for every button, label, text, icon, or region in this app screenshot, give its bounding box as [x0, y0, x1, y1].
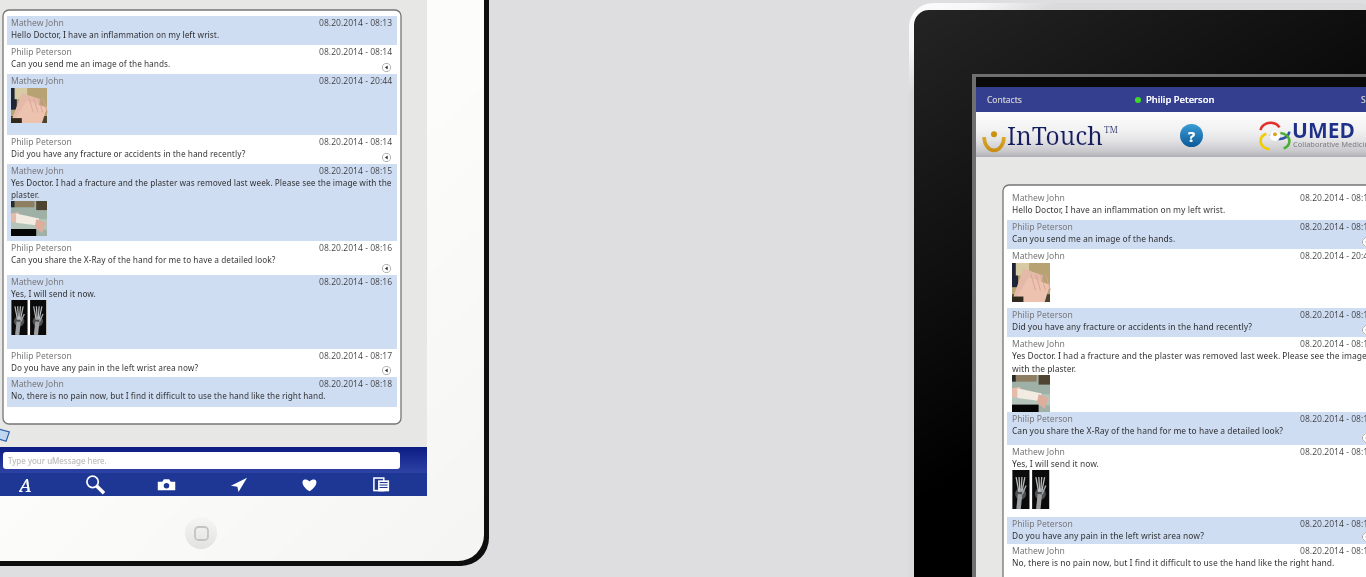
staticText: Do you have any pain in the left wrist a… [1012, 530, 1204, 541]
staticText: Can you share the X-Ray of the hand for … [1012, 425, 1284, 436]
staticText: Philip Peterson [1141, 93, 1215, 106]
staticText: 08.20.2014 - 08:14 [1300, 221, 1366, 233]
staticText: Mathew John [1012, 250, 1065, 262]
staticText: Yes, I will send it now. [1012, 458, 1099, 469]
staticText: No, there is no pain now, but I find it … [1012, 557, 1335, 568]
button[interactable]: Philip Peterson [7, 241, 397, 275]
staticText: Yes, I will send it now. [11, 288, 96, 299]
staticText: Mathew John [11, 378, 64, 390]
staticText: Philip Peterson [1012, 221, 1073, 233]
staticText: Philip Peterson [11, 242, 72, 254]
staticText: 08.20.2014 - 20:44 [1300, 250, 1366, 262]
staticText: TM [1104, 123, 1118, 135]
staticText: Mathew John [1012, 192, 1065, 204]
staticText: Mathew John [1012, 545, 1065, 557]
staticText: Collaborative Medicine [1293, 139, 1366, 149]
staticText: 08.20.2014 - 08:14 [319, 136, 393, 148]
staticText: 08.20.2014 - 08:17 [1300, 518, 1366, 530]
button[interactable]: Mathew John [1007, 544, 1366, 573]
staticText: Philip Peterson [11, 46, 72, 58]
button[interactable]: Contacts [987, 94, 1022, 106]
staticText: Type your uMessage here. [8, 455, 107, 466]
button[interactable]: Help [1180, 124, 1203, 147]
staticText: No, there is no pain now, but I find it … [11, 390, 326, 401]
staticText: Can you send me an image of the hands. [11, 58, 171, 69]
staticText: 08.20.2014 - 08:15 [1300, 338, 1366, 350]
staticText: ? [1188, 126, 1196, 146]
button[interactable]: Play message [382, 366, 391, 375]
staticText: 08.20.2014 - 08:18 [1300, 545, 1366, 557]
button[interactable]: Camera [153, 473, 180, 496]
button[interactable]: Mathew John [7, 377, 397, 407]
button[interactable]: Play message [1362, 433, 1366, 443]
staticText: Did you have any fracture or accidents i… [1012, 321, 1253, 332]
button[interactable]: Mathew John [1007, 191, 1366, 220]
button[interactable]: Mathew John [1007, 337, 1366, 412]
staticText: Can you share the X-Ray of the hand for … [11, 254, 276, 265]
button[interactable]: Philip Peterson [1007, 308, 1366, 337]
button[interactable]: Search [81, 473, 108, 496]
button[interactable]: Play message [1362, 237, 1366, 247]
staticText: Mathew John [1012, 446, 1065, 458]
button[interactable]: Play message [382, 153, 391, 162]
staticText: Philip Peterson [1012, 413, 1073, 425]
button[interactable]: Type your uMessage here. [3, 452, 400, 469]
staticText: 08.20.2014 - 08:16 [319, 242, 393, 254]
staticText: Philip Peterson [11, 136, 72, 148]
staticText: 08.20.2014 - 20:44 [319, 75, 393, 87]
staticText: Philip Peterson [11, 350, 72, 362]
button[interactable]: Play message [382, 63, 391, 72]
staticText: Mathew John [11, 75, 64, 87]
staticText: 08.20.2014 - 08:14 [319, 46, 393, 58]
staticText: 08.20.2014 - 08:14 [1300, 309, 1366, 321]
button[interactable]: Documents [368, 473, 395, 496]
staticText: 08.20.2014 - 08:16 [1300, 413, 1366, 425]
button[interactable]: Home [185, 517, 217, 549]
staticText: Mathew John [11, 17, 64, 29]
button[interactable]: Mathew John [1007, 445, 1366, 517]
staticText: Hello Doctor, I have an inflammation on … [1012, 204, 1226, 215]
staticText: 08.20.2014 - 08:13 [319, 17, 393, 29]
staticText: A [19, 473, 32, 496]
staticText: Yes Doctor. I had a fracture and the pla… [11, 177, 393, 200]
button[interactable]: Philip Peterson [1007, 412, 1366, 445]
button[interactable]: Play message [1362, 532, 1366, 542]
button[interactable]: Philip Peterson [1007, 517, 1366, 544]
button[interactable]: Mathew John [7, 275, 397, 349]
button[interactable]: Play message [382, 264, 391, 273]
staticText: Mathew John [11, 165, 64, 177]
staticText: 08.20.2014 - 08:13 [1300, 192, 1366, 204]
staticText: Hello Doctor, I have an inflammation on … [11, 29, 220, 40]
staticText: UMED [1292, 116, 1355, 145]
staticText: 08.20.2014 - 08:18 [319, 378, 393, 390]
staticText: Mathew John [11, 276, 64, 288]
staticText: 08.20.2014 - 08:16 [1300, 446, 1366, 458]
button[interactable]: Location [225, 473, 252, 496]
staticText: Yes Doctor. I had a fracture and the pla… [1012, 350, 1366, 374]
button[interactable]: Mathew John [7, 164, 397, 241]
staticText: S [1361, 94, 1366, 106]
button[interactable]: Compose [12, 473, 39, 496]
button[interactable]: Philip Peterson [7, 45, 397, 74]
button[interactable]: Play message [1362, 325, 1366, 335]
button[interactable]: Favorites [296, 473, 323, 496]
button[interactable]: Mathew John [7, 16, 397, 45]
staticText: Mathew John [1012, 338, 1065, 350]
button[interactable]: Mathew John [1007, 249, 1366, 308]
staticText: Did you have any fracture or accidents i… [11, 148, 246, 159]
staticText: InTouch [1007, 119, 1103, 152]
staticText: 08.20.2014 - 08:15 [319, 165, 393, 177]
staticText: Can you send me an image of the hands. [1012, 233, 1176, 244]
button[interactable]: Philip Peterson [1007, 220, 1366, 249]
staticText: 08.20.2014 - 08:16 [319, 276, 393, 288]
button[interactable]: Philip Peterson [7, 135, 397, 164]
staticText: 08.20.2014 - 08:17 [319, 350, 393, 362]
button[interactable]: Mathew John [7, 74, 397, 135]
button[interactable]: Philip Peterson [7, 349, 397, 377]
staticText: Do you have any pain in the left wrist a… [11, 362, 199, 373]
staticText: Philip Peterson [1012, 518, 1073, 530]
staticText: Philip Peterson [1012, 309, 1073, 321]
